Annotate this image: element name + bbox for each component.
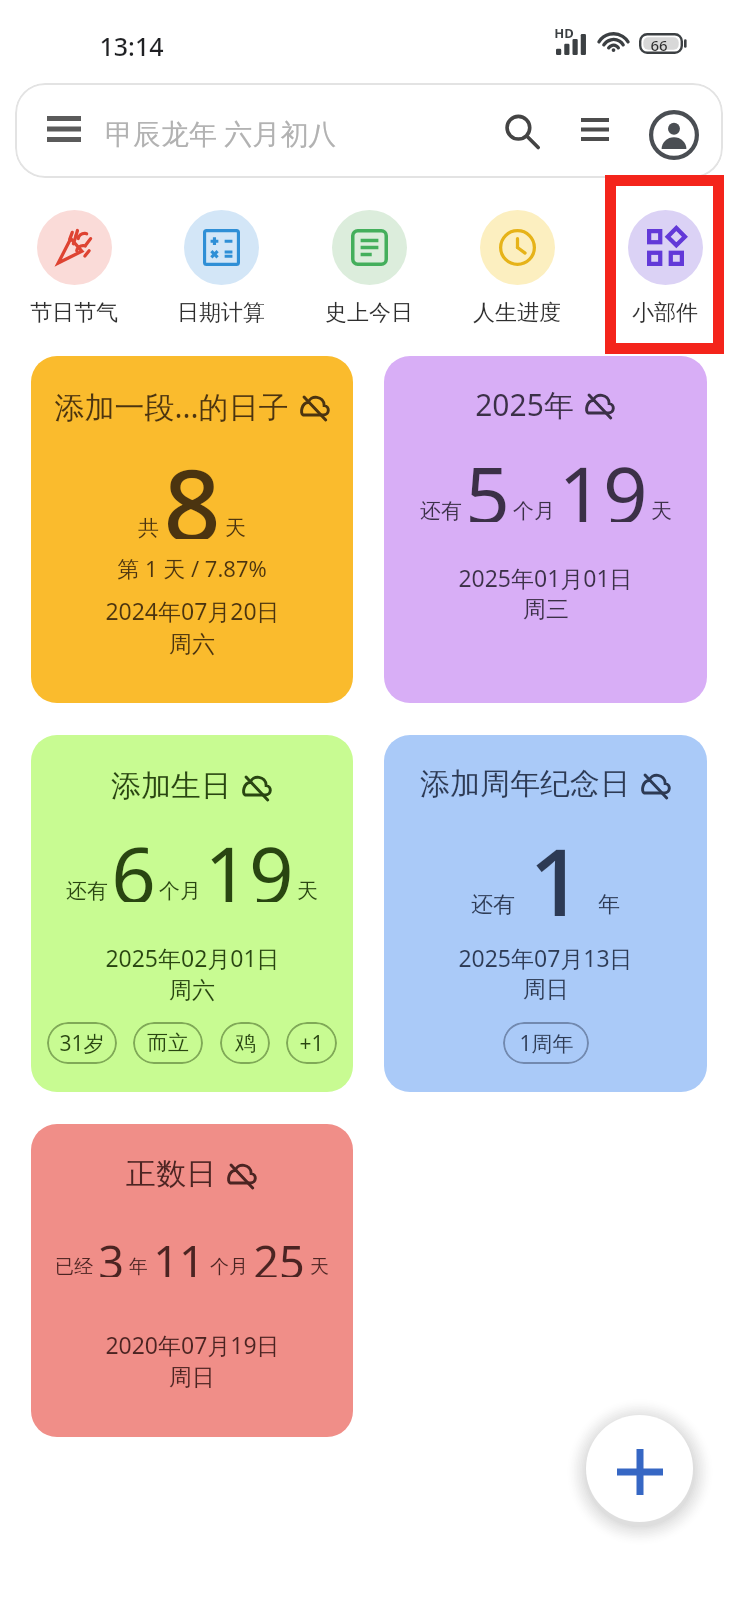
staticText: HD (554, 24, 574, 42)
staticText: 节日节气 (30, 299, 118, 327)
staticText: 年 (598, 891, 620, 919)
staticText: 添加周年纪念日 (420, 765, 630, 803)
staticText: 已经 (55, 1255, 93, 1279)
staticText: 周日 (523, 975, 569, 1004)
staticText: 2020年07月19日 (105, 1329, 280, 1360)
staticText: 周日 (169, 1363, 215, 1392)
staticText: 天 (651, 498, 672, 524)
button[interactable]: 2025年 (384, 356, 707, 703)
staticText: 添加生日 (111, 767, 231, 805)
button[interactable]: 节日节气 (13, 210, 135, 327)
staticText: 鸡 (235, 1030, 256, 1056)
button[interactable]: 史上今日 (308, 210, 430, 327)
staticText: 第 1 天 / 7.87% (117, 553, 267, 583)
other: View options (581, 118, 609, 141)
staticText: 个月 (210, 1255, 248, 1279)
button[interactable]: 日期计算 (160, 210, 282, 327)
staticText: 还有 (420, 498, 462, 524)
staticText: 6 (111, 821, 156, 902)
staticText: 周三 (523, 595, 569, 624)
staticText: 2024年07月20日 (105, 595, 280, 626)
staticText: 个月 (159, 878, 201, 904)
staticText: 13:14 (99, 29, 164, 63)
staticText: 2025年01月01日 (458, 562, 633, 593)
button[interactable]: 添加周年纪念日 (384, 735, 707, 1092)
staticText: 还有 (66, 878, 108, 904)
button[interactable]: 添加一段...的日子 (31, 356, 353, 703)
staticText: 3 (98, 1231, 124, 1277)
other: Search (504, 114, 540, 150)
button[interactable]: +1 (286, 1022, 337, 1064)
staticText: 2025年02月01日 (105, 942, 280, 973)
staticText: 周六 (169, 630, 215, 659)
staticText: 5 (465, 441, 510, 522)
staticText: 25 (253, 1231, 305, 1277)
staticText: 还有 (471, 891, 515, 919)
staticText: 日期计算 (177, 299, 265, 327)
staticText: 天 (297, 878, 318, 904)
staticText: 史上今日 (325, 299, 413, 327)
staticText: 小部件 (632, 299, 698, 327)
button[interactable]: 小部件 (604, 210, 726, 327)
other: Menu (47, 116, 81, 142)
button[interactable]: 31岁 (47, 1022, 117, 1064)
staticText: 年 (129, 1255, 148, 1279)
staticText: 周六 (169, 976, 215, 1005)
button[interactable]: 鸡 (220, 1022, 270, 1064)
button[interactable]: 1周年 (503, 1022, 589, 1064)
staticText: 19 (204, 821, 294, 902)
staticText: 正数日 (126, 1155, 216, 1193)
button[interactable]: 正数日 (31, 1124, 353, 1437)
button[interactable]: 而立 (133, 1022, 203, 1064)
button[interactable]: 人生进度 (456, 210, 578, 327)
staticText: 添加一段...的日子 (54, 386, 289, 427)
staticText: 天 (310, 1255, 329, 1279)
staticText: 1 (528, 815, 585, 916)
staticText: 66 (650, 35, 668, 55)
staticText: +1 (299, 1029, 324, 1058)
staticText: 人生进度 (473, 299, 561, 327)
staticText: 天 (225, 515, 246, 541)
staticText: 2025年07月13日 (458, 942, 633, 973)
staticText: 1周年 (519, 1029, 574, 1058)
staticText: 共 (138, 515, 159, 541)
button[interactable]: Add (586, 1415, 693, 1522)
button[interactable]: Menu (15, 83, 723, 178)
staticText: 而立 (147, 1030, 189, 1056)
staticText: 2025年 (475, 384, 574, 425)
staticText: 11 (153, 1231, 205, 1277)
staticText: 31岁 (59, 1029, 105, 1058)
button[interactable]: 添加生日 (31, 735, 353, 1092)
staticText: 个月 (513, 498, 555, 524)
other: Profile (649, 110, 699, 160)
staticText: 19 (558, 441, 648, 522)
staticText: 甲辰龙年 六月初八 (105, 114, 337, 152)
staticText: 8 (163, 435, 221, 539)
